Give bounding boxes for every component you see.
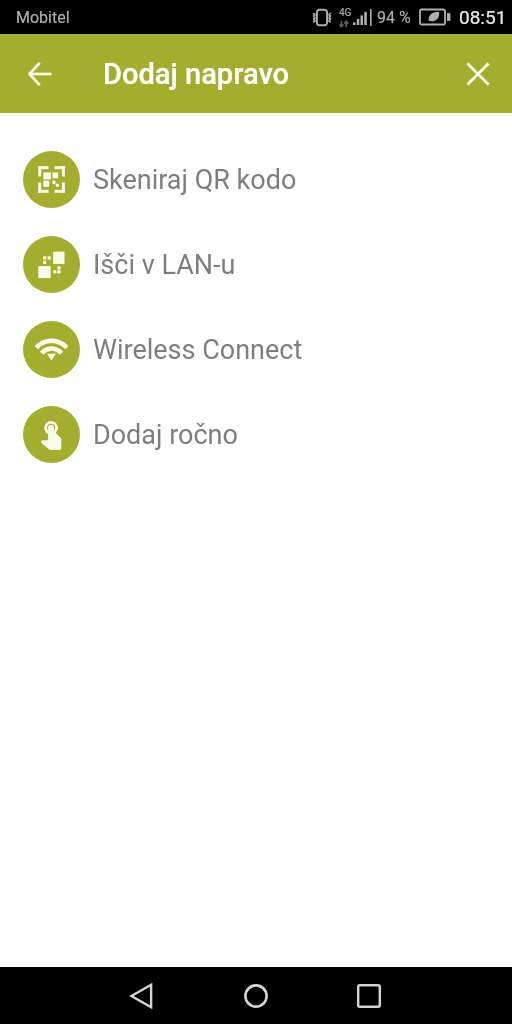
button[interactable]: Close bbox=[456, 52, 500, 96]
button[interactable]: Išči v LAN-u bbox=[0, 222, 512, 307]
staticText: 08:51 bbox=[459, 6, 507, 28]
button[interactable]: Dodaj ročno bbox=[0, 392, 512, 477]
button[interactable]: Wireless Connect bbox=[0, 307, 512, 392]
staticText: Mobitel bbox=[16, 8, 70, 27]
staticText: Wireless Connect bbox=[93, 334, 303, 366]
staticText: Skeniraj QR kodo bbox=[93, 164, 297, 196]
staticText: 4G bbox=[339, 7, 352, 19]
button[interactable]: Back bbox=[18, 52, 62, 96]
button[interactable]: Back bbox=[118, 972, 166, 1020]
button[interactable]: Skeniraj QR kodo bbox=[0, 137, 512, 222]
staticText: Dodaj napravo bbox=[103, 57, 290, 91]
button[interactable]: Recents bbox=[345, 972, 393, 1020]
staticText: Dodaj ročno bbox=[93, 419, 238, 451]
staticText: Išči v LAN-u bbox=[93, 249, 236, 281]
staticText: 94 % bbox=[377, 8, 411, 27]
button[interactable]: Home bbox=[232, 972, 280, 1020]
